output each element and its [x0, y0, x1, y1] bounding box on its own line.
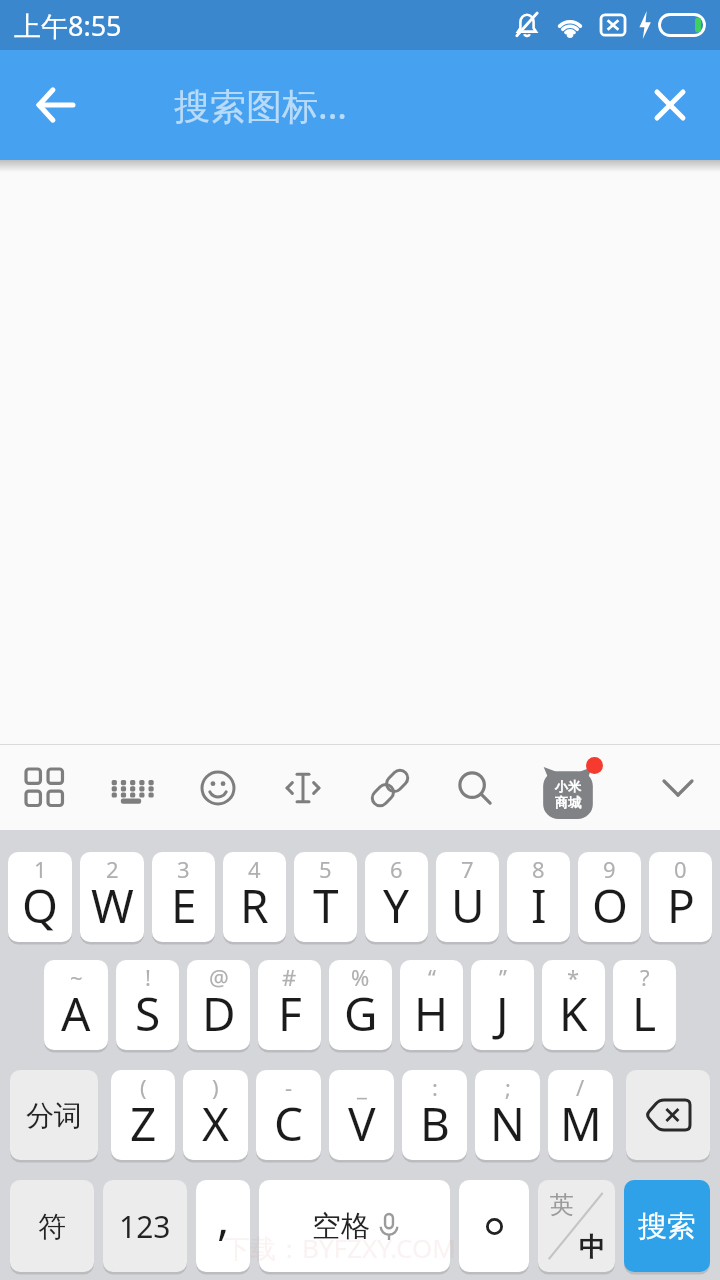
staticText: # [282, 962, 297, 992]
staticText: P [667, 874, 695, 937]
staticText: 5 [319, 854, 332, 884]
button[interactable]: , [196, 1180, 250, 1272]
button[interactable]: 0 [649, 852, 712, 942]
button[interactable] [352, 750, 428, 826]
button[interactable]: % [329, 960, 392, 1050]
staticText: A [61, 982, 91, 1045]
staticText: 分词 [26, 1098, 82, 1133]
button[interactable]: 搜索 [624, 1180, 710, 1272]
staticText: , [217, 1186, 230, 1249]
staticText: 0 [674, 854, 687, 884]
staticText: % [351, 962, 370, 992]
staticText: 空格 [312, 1208, 370, 1245]
button[interactable]: 小米 [530, 750, 606, 826]
staticText: 下载：BYFZXY.COM [224, 1230, 456, 1266]
button[interactable]: ( [111, 1070, 175, 1160]
staticText: _ [357, 1072, 367, 1102]
staticText: U [451, 874, 485, 937]
button[interactable]: ! [116, 960, 179, 1050]
staticText: C [274, 1092, 304, 1155]
staticText: D [202, 982, 236, 1045]
button[interactable]: 符 [10, 1180, 94, 1272]
button[interactable]: @ [187, 960, 250, 1050]
staticText: 英 [550, 1190, 574, 1220]
button[interactable]: : [402, 1070, 467, 1160]
staticText: E [171, 874, 197, 937]
button[interactable] [0, 67, 112, 143]
button[interactable]: 4 [223, 852, 286, 942]
staticText: 4 [248, 854, 261, 884]
staticText: * [567, 962, 580, 992]
button[interactable] [180, 750, 256, 826]
staticText: N [490, 1092, 525, 1155]
button[interactable]: ) [183, 1070, 248, 1160]
button[interactable] [632, 67, 708, 143]
button[interactable]: 空格 [259, 1180, 450, 1272]
button[interactable]: 123 [103, 1180, 187, 1272]
button[interactable]: 分词 [10, 1070, 98, 1160]
staticText: ” [499, 962, 507, 992]
staticText: 上午8:55 [14, 7, 122, 44]
staticText: 6 [390, 854, 403, 884]
button[interactable] [640, 750, 716, 826]
button[interactable]: ? [613, 960, 676, 1050]
staticText: R [240, 874, 269, 937]
button[interactable]: 8 [507, 852, 570, 942]
button[interactable]: 英 [538, 1180, 615, 1272]
button[interactable]: “ [400, 960, 463, 1050]
button[interactable]: ” [471, 960, 534, 1050]
staticText: 2 [106, 854, 119, 884]
button[interactable]: 7 [436, 852, 499, 942]
staticText: ~ [70, 962, 83, 992]
staticText: 搜索 [638, 1208, 696, 1245]
staticText: 小米 [555, 778, 581, 794]
button[interactable] [437, 750, 513, 826]
button[interactable] [265, 750, 341, 826]
staticText: 3 [177, 854, 190, 884]
button[interactable]: ; [475, 1070, 540, 1160]
button[interactable] [626, 1070, 710, 1160]
staticText: 符 [38, 1209, 66, 1244]
staticText: F [278, 982, 302, 1045]
staticText: 1 [34, 854, 47, 884]
staticText: H [414, 982, 449, 1045]
staticText: W [91, 874, 134, 937]
staticText: O [592, 874, 628, 937]
staticText: I [531, 874, 547, 937]
staticText: 搜索图标... [174, 81, 347, 130]
button[interactable]: _ [329, 1070, 394, 1160]
staticText: ! [145, 962, 151, 992]
staticText: ( [140, 1072, 147, 1102]
button[interactable]: 3 [152, 852, 215, 942]
staticText: Z [130, 1092, 157, 1155]
button[interactable] [7, 750, 83, 826]
button[interactable]: 6 [365, 852, 428, 942]
staticText: 8 [532, 854, 545, 884]
staticText: 中 [579, 1231, 605, 1264]
button[interactable]: ~ [44, 960, 108, 1050]
button[interactable]: # [258, 960, 321, 1050]
button[interactable] [93, 750, 169, 826]
button[interactable]: - [256, 1070, 321, 1160]
button[interactable]: 搜索图标... [174, 81, 632, 130]
button[interactable]: 5 [294, 852, 357, 942]
button[interactable]: / [548, 1070, 613, 1160]
staticText: B [420, 1092, 450, 1155]
staticText: Q [22, 874, 58, 937]
staticText: V [348, 1092, 376, 1155]
staticText: : [432, 1072, 438, 1102]
staticText: J [496, 982, 509, 1045]
button[interactable]: 1 [8, 852, 72, 942]
button[interactable]: 2 [80, 852, 144, 942]
button[interactable]: * [542, 960, 605, 1050]
staticText: Y [383, 874, 410, 937]
staticText: 123 [119, 1206, 171, 1247]
button[interactable] [459, 1180, 529, 1272]
button[interactable]: 9 [578, 852, 641, 942]
staticText: 7 [461, 854, 474, 884]
staticText: M [560, 1092, 602, 1155]
staticText: K [559, 982, 588, 1045]
staticText: T [313, 874, 339, 937]
staticText: ? [640, 962, 650, 992]
staticText: / [576, 1072, 585, 1102]
